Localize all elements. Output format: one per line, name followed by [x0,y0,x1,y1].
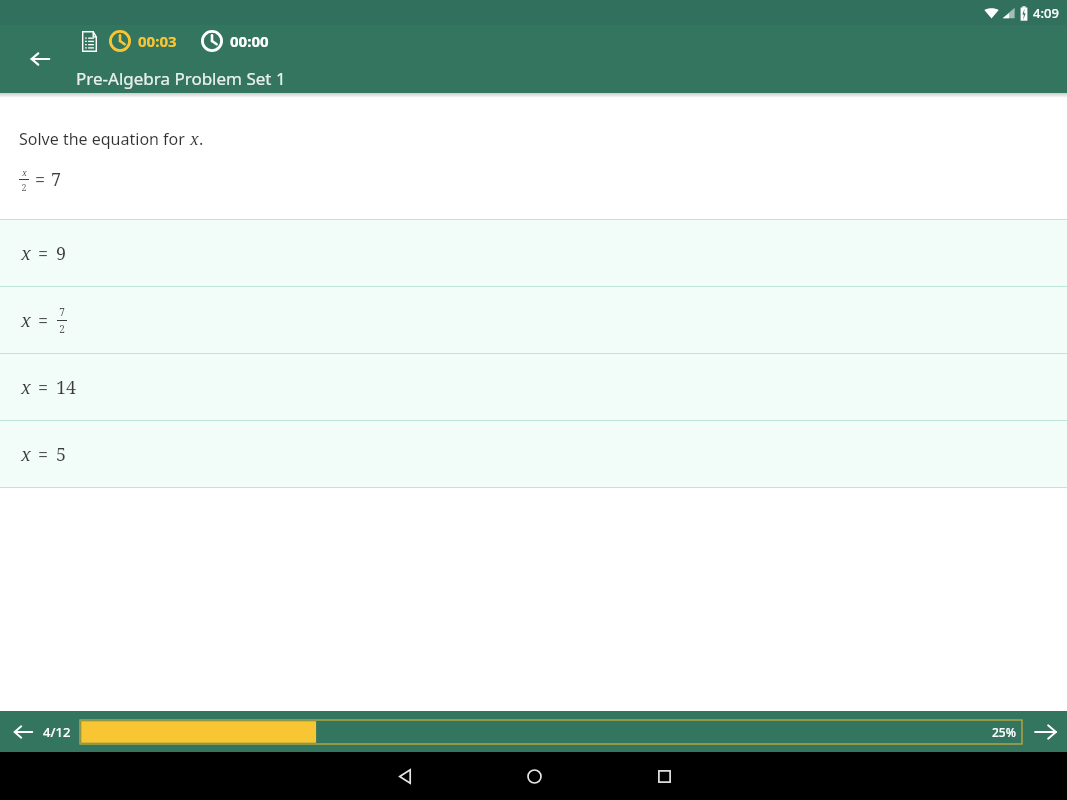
button[interactable]: Navigate up [20,39,60,79]
staticText: 2 [21,181,27,193]
staticText: x [22,166,27,178]
staticText: = [38,241,49,266]
staticText: 9 [56,241,67,266]
staticText: = [35,167,46,192]
staticText: 4/12 [43,723,71,741]
staticText: x [21,241,31,266]
staticText: 2 [59,322,65,336]
button[interactable]: x [0,220,1067,286]
staticText: 4:09 [1033,4,1059,22]
button[interactable]: Total timer [201,30,269,52]
staticText: = [38,308,49,333]
staticText: = [38,442,49,467]
staticText: x [190,128,199,150]
staticText: x [21,442,31,467]
staticText: . [199,128,204,150]
staticText: = [38,375,49,400]
staticText: 00:03 [138,31,177,51]
button[interactable]: Back [372,756,436,796]
staticText: 7 [59,305,65,319]
button[interactable]: x [0,421,1067,487]
staticText: 7 [51,167,62,192]
button[interactable]: Home [502,756,566,796]
button[interactable]: Question timer [109,30,177,52]
staticText: 14 [56,375,77,400]
staticText: Pre-Algebra Problem Set 1 [76,67,286,90]
button[interactable]: Next question [1029,717,1063,747]
staticText: 5 [56,442,67,467]
staticText: Solve the equation for [19,128,190,150]
staticText: 25% [992,724,1016,740]
staticText: 00:00 [230,31,269,51]
button[interactable]: Recent apps [632,756,696,796]
staticText: x [21,308,31,333]
button[interactable]: x [0,287,1067,353]
staticText: x [21,375,31,400]
button[interactable]: x [0,354,1067,420]
button[interactable]: Previous question [8,717,38,747]
